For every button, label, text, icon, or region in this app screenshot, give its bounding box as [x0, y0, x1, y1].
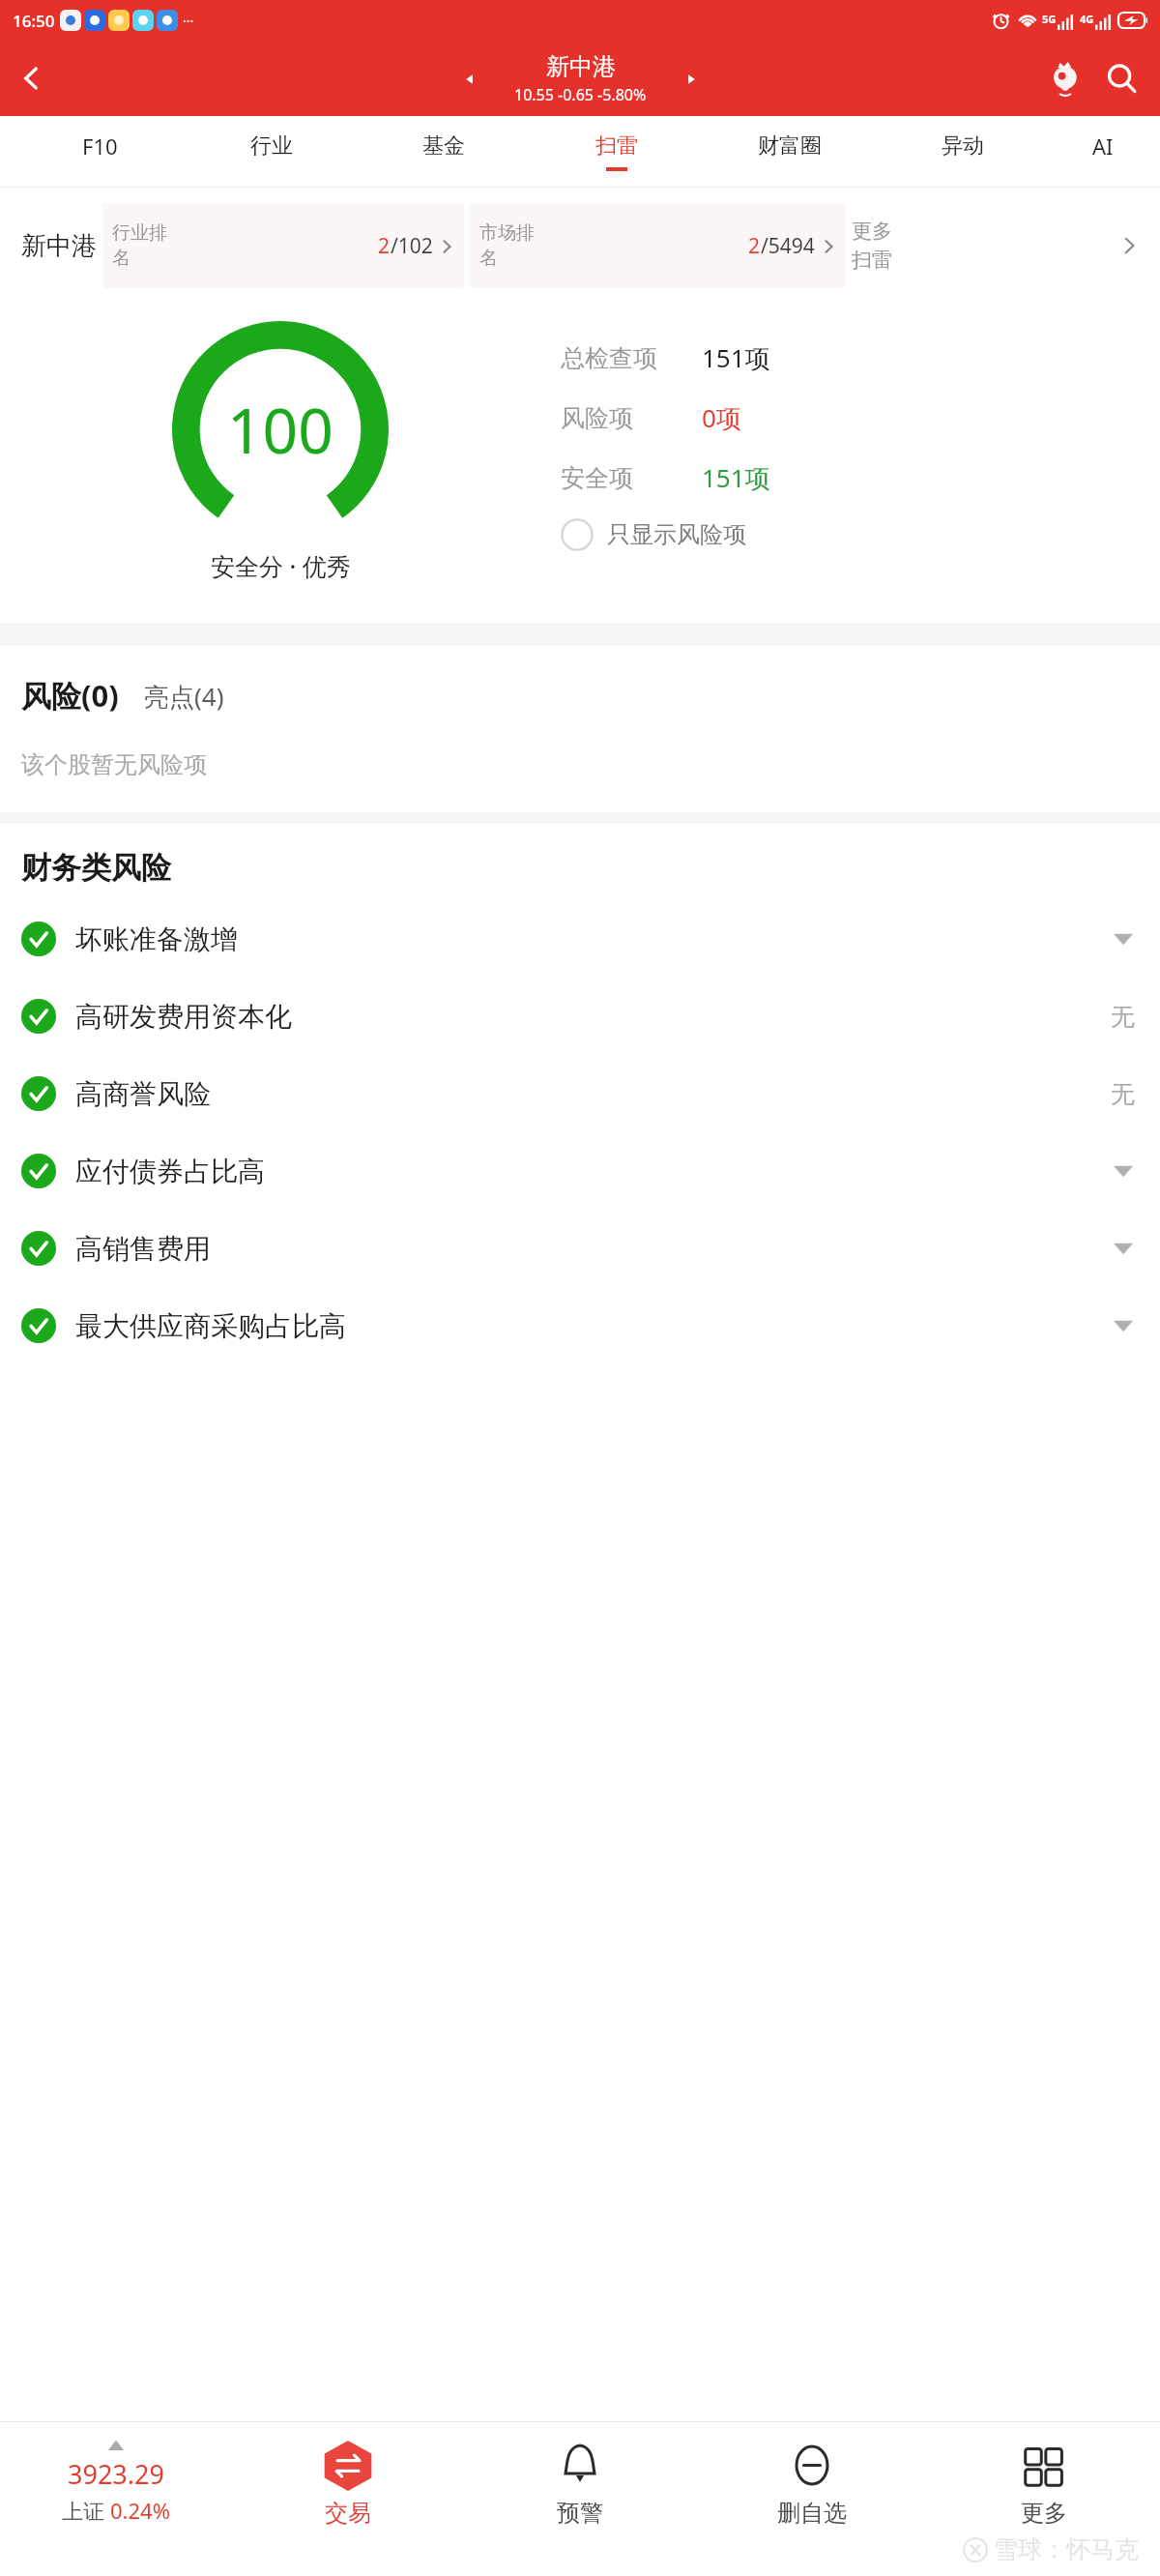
button[interactable]: 风险(0): [21, 675, 119, 716]
button[interactable]: 预警: [464, 2431, 696, 2576]
button[interactable]: 只显示风险项: [561, 518, 752, 551]
button[interactable]: Search: [1092, 49, 1150, 107]
staticText: 更多扫雷: [852, 219, 910, 274]
button[interactable]: 高商誉风险: [0, 1055, 1160, 1132]
staticText: 0项: [702, 400, 741, 435]
button[interactable]: 亮点(4): [144, 679, 224, 716]
staticText: 风险项: [561, 403, 677, 433]
staticText: 高研发费用资本化: [75, 1000, 292, 1034]
staticText: /102: [391, 232, 433, 260]
button[interactable]: AI: [1049, 116, 1156, 188]
button[interactable]: 行业: [186, 116, 358, 188]
staticText: 基金: [422, 132, 465, 160]
staticText: 4G: [1080, 12, 1094, 26]
button[interactable]: 行业排名: [102, 203, 464, 288]
staticText: 新中港: [546, 52, 616, 81]
button[interactable]: Previous stock: [449, 58, 491, 101]
staticText: /5494: [761, 232, 815, 260]
staticText: 亮点(4): [144, 679, 224, 714]
button[interactable]: F10: [14, 116, 186, 188]
staticText: 无: [1111, 1079, 1135, 1109]
button[interactable]: 更多: [928, 2431, 1160, 2576]
staticText: 只显示风险项: [607, 520, 746, 549]
staticText: 高销售费用: [75, 1232, 211, 1266]
staticText: 行业: [250, 132, 293, 160]
staticText: 安全项: [561, 463, 677, 493]
staticText: 应付债券占比高: [75, 1155, 265, 1188]
button[interactable]: Next stock: [670, 58, 712, 101]
staticText: 行业排名: [112, 221, 168, 270]
staticText: 5G: [1042, 12, 1057, 26]
staticText: 151项: [702, 340, 770, 375]
staticText: 上证: [62, 2496, 110, 2525]
staticText: 2: [748, 232, 761, 260]
button[interactable]: 高销售费用: [0, 1210, 1160, 1287]
staticText: 总检查项: [561, 343, 677, 373]
staticText: 2: [378, 232, 391, 260]
button[interactable]: 交易: [232, 2431, 464, 2576]
staticText: AI: [1092, 132, 1114, 161]
button[interactable]: Back: [0, 41, 64, 116]
staticText: 151项: [702, 460, 770, 495]
button[interactable]: 删自选: [696, 2431, 928, 2576]
staticText: 交易: [325, 2499, 371, 2528]
button[interactable]: 更多扫雷: [852, 188, 1148, 304]
staticText: 最大供应商采购占比高: [75, 1309, 346, 1343]
button[interactable]: Assistant: [1038, 51, 1092, 105]
staticText: 异动: [942, 132, 984, 160]
button[interactable]: 最大供应商采购占比高: [0, 1287, 1160, 1364]
staticText: 0.24%: [110, 2496, 170, 2525]
staticText: 预警: [557, 2499, 603, 2528]
button[interactable]: 扫雷: [530, 116, 703, 188]
staticText: 坏账准备激增: [75, 922, 238, 956]
staticText: 删自选: [777, 2499, 847, 2528]
staticText: 高商誉风险: [75, 1077, 211, 1111]
staticText: 更多: [1021, 2499, 1067, 2528]
staticText: 10.55 -0.65 -5.80%: [514, 84, 647, 105]
button[interactable]: 财富圈: [703, 116, 876, 188]
button[interactable]: 高研发费用资本化: [0, 978, 1160, 1055]
button[interactable]: 市场排名: [470, 203, 846, 288]
staticText: 财务类风险: [21, 849, 171, 887]
staticText: 扫雷: [595, 132, 638, 160]
staticText: 100: [227, 388, 333, 472]
staticText: 3923.29: [68, 2456, 164, 2492]
staticText: 该个股暂无风险项: [21, 750, 207, 779]
staticText: ···: [183, 12, 194, 30]
button[interactable]: 3923.29: [0, 2431, 232, 2576]
staticText: 财富圈: [758, 132, 822, 160]
staticText: 市场排名: [479, 221, 536, 270]
staticText: 雪球：怀马克: [994, 2534, 1139, 2564]
button[interactable]: 坏账准备激增: [0, 900, 1160, 978]
staticText: 安全分 · 优秀: [211, 549, 351, 582]
staticText: 风险(0): [21, 675, 119, 716]
staticText: 新中港: [21, 230, 97, 262]
button[interactable]: 基金: [358, 116, 530, 188]
staticText: 无: [1111, 1002, 1135, 1032]
button[interactable]: 应付债券占比高: [0, 1132, 1160, 1210]
staticText: 16:50: [13, 10, 55, 32]
button[interactable]: 异动: [876, 116, 1049, 188]
staticText: F10: [82, 132, 118, 161]
